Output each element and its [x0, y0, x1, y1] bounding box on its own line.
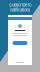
staticText: notifications	[10, 7, 30, 12]
button[interactable]	[12, 41, 27, 45]
staticText: Subscribe to	[9, 3, 31, 7]
